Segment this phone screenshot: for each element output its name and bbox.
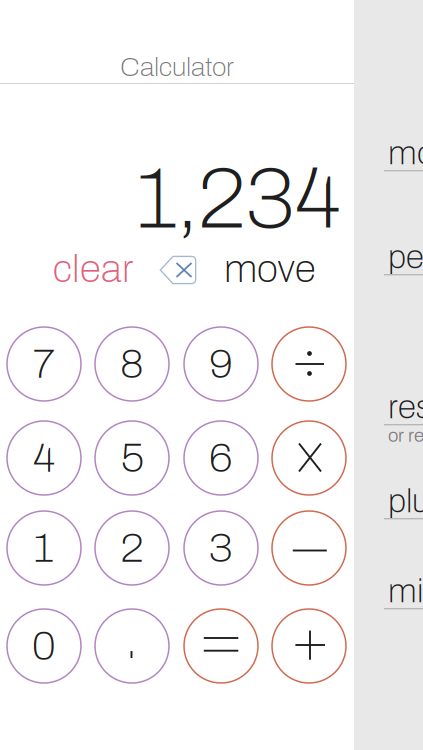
button[interactable]: plus bbox=[388, 483, 423, 519]
staticText: 1 bbox=[34, 525, 53, 570]
button[interactable]: Delete bbox=[158, 250, 198, 290]
staticText: 5 bbox=[120, 435, 143, 480]
button[interactable]: Plus bbox=[272, 609, 346, 683]
staticText: or recall bbox=[388, 425, 423, 446]
button[interactable]: Decimal separator bbox=[95, 609, 169, 683]
button[interactable]: clear bbox=[53, 249, 133, 289]
staticText: minus bbox=[388, 573, 423, 609]
button[interactable]: 9 bbox=[184, 327, 258, 401]
staticText: 3 bbox=[209, 525, 233, 570]
staticText: 2 bbox=[120, 525, 143, 570]
staticText: 0 bbox=[32, 623, 56, 668]
button[interactable]: percent bbox=[388, 239, 423, 275]
button[interactable]: 4 bbox=[7, 421, 81, 495]
staticText: clear bbox=[53, 248, 133, 290]
button[interactable]: move bbox=[224, 249, 314, 289]
button[interactable]: 1 bbox=[7, 511, 81, 585]
staticText: plus bbox=[388, 483, 423, 519]
button[interactable]: 8 bbox=[95, 327, 169, 401]
button[interactable]: 7 bbox=[7, 327, 81, 401]
button[interactable]: Divide bbox=[272, 327, 346, 401]
staticText: 1,234 bbox=[138, 153, 340, 245]
button[interactable]: Multiply bbox=[272, 421, 346, 495]
button[interactable]: mode bbox=[388, 135, 423, 171]
button[interactable]: 3 bbox=[184, 511, 258, 585]
button[interactable]: minus bbox=[388, 573, 423, 609]
button[interactable]: Equals bbox=[184, 609, 258, 683]
staticText: percent bbox=[388, 239, 423, 275]
staticText: 6 bbox=[209, 435, 233, 480]
staticText: 4 bbox=[33, 435, 55, 480]
staticText: 9 bbox=[209, 341, 233, 386]
button[interactable]: 5 bbox=[95, 421, 169, 495]
button[interactable]: result bbox=[388, 389, 423, 446]
staticText: result bbox=[388, 389, 423, 425]
staticText: mode bbox=[388, 135, 423, 171]
staticText: Calculator bbox=[120, 52, 234, 81]
staticText: 7 bbox=[33, 341, 55, 386]
button[interactable]: 2 bbox=[95, 511, 169, 585]
button[interactable]: 6 bbox=[184, 421, 258, 495]
staticText: 8 bbox=[120, 341, 144, 386]
staticText: move bbox=[224, 248, 316, 290]
button[interactable]: Minus bbox=[272, 511, 346, 585]
button[interactable]: 0 bbox=[7, 609, 81, 683]
